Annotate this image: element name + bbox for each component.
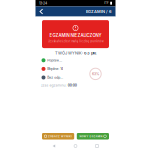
staticText: NOWY EGZAMIN [79,135,102,138]
staticText: Poprawne: 18 [47,58,63,62]
staticText: EGZAMIN NIEZALICZONY [49,33,101,38]
staticText: 13:24 [39,1,47,5]
button[interactable]: Recents [94,143,100,149]
staticText: LTE [104,1,109,5]
staticText: Czas egzaminu: [40,83,66,87]
staticText: 63% [92,72,99,76]
staticText: Uzyskałeś zbyt małą liczbę punktów [47,40,103,43]
button[interactable]: Home [72,143,78,149]
staticText: EGZAMIN / 6 [86,9,112,14]
staticText: ZOBACZ WYNIKI [48,135,72,138]
button[interactable]: NOWY EGZAMIN [77,133,109,139]
staticText: Błędne: 14 [47,67,63,71]
button[interactable]: ZOBACZ WYNIKI [42,133,74,139]
button[interactable]: Back [51,143,57,149]
button[interactable]: Back [35,6,48,17]
staticText: 63 pkt [84,51,96,55]
staticText: 00:00 [68,83,77,87]
staticText: Bez odp.: 0 [47,75,63,79]
staticText: TWÓJ WYNIK: [55,51,83,55]
